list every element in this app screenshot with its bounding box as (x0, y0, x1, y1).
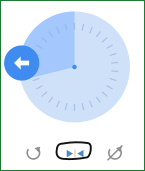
button[interactable]: Repeat off (96, 137, 134, 169)
button[interactable]: Pause (56, 138, 94, 170)
button[interactable]: Restart (14, 137, 52, 169)
button[interactable]: Back (4, 45, 39, 81)
